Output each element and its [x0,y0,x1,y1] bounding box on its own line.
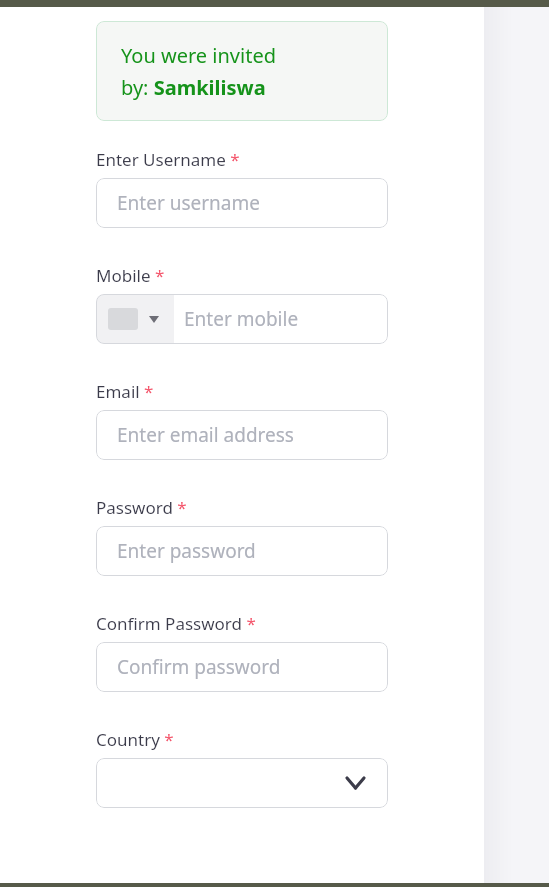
staticText: Enter username [117,190,260,216]
staticText: Confirm Password * [96,612,256,635]
staticText: Confirm password [117,654,281,680]
staticText: Mobile * [96,264,165,287]
staticText: Enter mobile [184,306,299,332]
button[interactable]: Confirm password [96,642,388,692]
staticText: Email * [96,380,154,403]
button[interactable]: Select country code [96,294,174,344]
staticText: by: Samkiliswa [121,74,266,101]
staticText: Password * [96,496,187,519]
staticText: Enter password [117,538,256,564]
button[interactable]: Select country [96,758,388,808]
staticText: Enter Username * [96,148,240,171]
staticText: Country * [96,728,174,751]
staticText: You were invited [121,42,276,69]
button[interactable]: Enter email address [96,410,388,460]
staticText: Enter email address [117,422,294,448]
button[interactable]: Enter username [96,178,388,228]
button[interactable]: Enter password [96,526,388,576]
